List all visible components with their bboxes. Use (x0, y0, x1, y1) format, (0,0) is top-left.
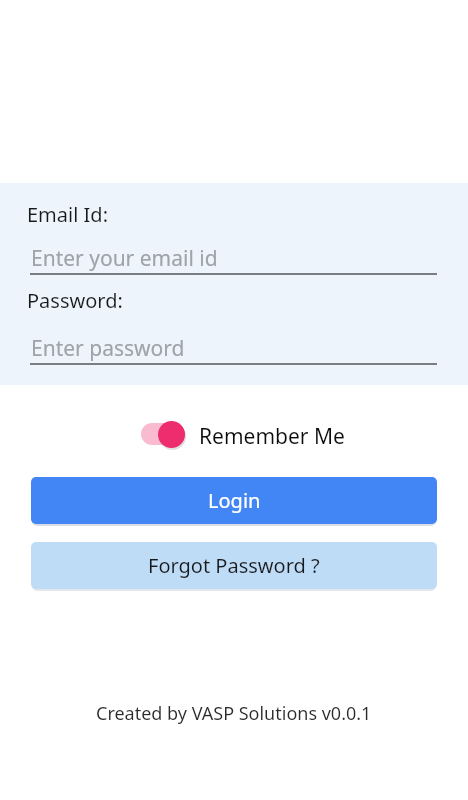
button[interactable] (138, 418, 190, 452)
button[interactable]: Login (31, 477, 437, 524)
button[interactable]: Forgot Password ? (31, 542, 437, 589)
staticText: Password: (27, 287, 123, 314)
staticText: Enter password (31, 334, 185, 363)
button[interactable]: Enter password (27, 330, 440, 368)
staticText: Enter your email id (31, 244, 218, 273)
staticText: Remember Me (199, 422, 345, 451)
staticText: Forgot Password ? (148, 552, 320, 579)
staticText: Email Id: (27, 201, 108, 228)
staticText: Login (208, 487, 261, 514)
staticText: Created by VASP Solutions v0.0.1 (96, 701, 372, 726)
button[interactable]: Enter your email id (27, 240, 440, 278)
